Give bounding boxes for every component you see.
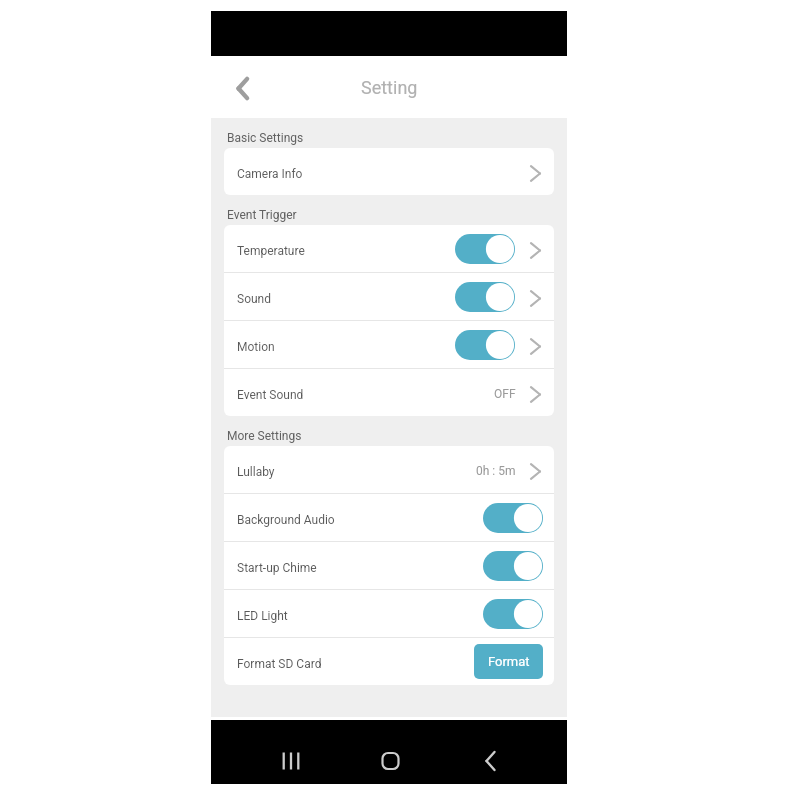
staticText: Basic Settings — [227, 131, 304, 145]
staticText: Event Sound — [237, 388, 304, 402]
button[interactable]: Back — [467, 739, 511, 783]
button[interactable]: Background Audio — [224, 494, 554, 541]
button[interactable]: Start-up Chime — [224, 542, 554, 589]
button[interactable]: Format SD Card — [224, 638, 554, 685]
staticText: OFF — [494, 387, 516, 401]
staticText: Temperature — [237, 244, 305, 258]
button[interactable]: Toggle — [483, 599, 543, 629]
staticText: Background Audio — [237, 513, 335, 527]
staticText: 0h : 5m — [476, 464, 516, 478]
button[interactable]: Toggle — [483, 551, 543, 581]
staticText: Start-up Chime — [237, 561, 317, 575]
button[interactable]: Motion — [224, 321, 554, 368]
staticText: Motion — [237, 340, 275, 354]
button[interactable]: Lullaby — [224, 446, 554, 493]
button[interactable]: Toggle — [483, 503, 543, 533]
button[interactable]: Sound — [224, 273, 554, 320]
button[interactable]: Toggle — [455, 330, 515, 360]
staticText: LED Light — [237, 609, 288, 623]
button[interactable]: Temperature — [224, 225, 554, 272]
button[interactable]: Camera Info — [224, 148, 554, 195]
staticText: Camera Info — [237, 167, 303, 181]
button[interactable]: LED Light — [224, 590, 554, 637]
staticText: Event Trigger — [227, 208, 297, 222]
button[interactable]: Format — [474, 644, 543, 679]
staticText: Format SD Card — [237, 657, 322, 671]
button[interactable]: Recent apps — [267, 739, 311, 783]
staticText: Format — [488, 654, 530, 669]
button[interactable]: Back — [221, 64, 267, 110]
staticText: Sound — [237, 292, 271, 306]
button[interactable]: Toggle — [455, 282, 515, 312]
staticText: Setting — [361, 77, 418, 98]
button[interactable]: Home — [367, 739, 411, 783]
staticText: Lullaby — [237, 465, 275, 479]
button[interactable]: Event Sound — [224, 369, 554, 416]
button[interactable]: Toggle — [455, 234, 515, 264]
staticText: More Settings — [227, 429, 302, 443]
